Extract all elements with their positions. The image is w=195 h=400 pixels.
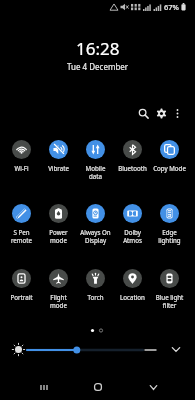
staticText: Bluetooth — [114, 164, 151, 172]
staticText: Portrait — [3, 293, 40, 301]
button[interactable]: Copy Mode — [151, 140, 188, 172]
staticText: 67% — [164, 2, 179, 12]
button[interactable]: Mobile — [77, 140, 114, 180]
staticText: remote — [3, 236, 40, 244]
staticText: Atmos — [114, 236, 151, 244]
staticText: Power — [40, 228, 77, 236]
staticText: Flight — [40, 293, 77, 301]
button[interactable]: Torch — [77, 269, 114, 301]
staticText: Wi-Fi — [3, 164, 40, 172]
button[interactable]: Wi-Fi — [3, 140, 40, 172]
staticText: Copy Mode — [151, 164, 188, 172]
button[interactable]: Search — [135, 105, 151, 121]
staticText: Location — [114, 293, 151, 301]
button[interactable]: Back — [131, 374, 175, 400]
staticText: mode — [40, 301, 77, 309]
staticText: Mobile — [77, 164, 114, 172]
button[interactable]: Always On — [77, 204, 114, 244]
button[interactable]: Portrait — [3, 269, 40, 301]
staticText: Torch — [77, 293, 114, 301]
staticText: filter — [151, 301, 188, 309]
staticText: Blue light — [151, 293, 188, 301]
button[interactable]: Dolby — [114, 204, 151, 244]
button[interactable]: Blue light — [151, 269, 188, 309]
button[interactable]: Bluetooth — [114, 140, 151, 172]
button[interactable]: Settings — [153, 105, 169, 121]
staticText: Tue 4 December — [67, 61, 129, 72]
button[interactable]: S Pen — [3, 204, 40, 244]
staticText: Vibrate — [40, 164, 77, 172]
button[interactable]: Recents — [22, 374, 66, 400]
button[interactable]: Vibrate — [40, 140, 77, 172]
staticText: S Pen — [3, 228, 40, 236]
staticText: Edge — [151, 228, 188, 236]
button[interactable]: Location — [114, 269, 151, 301]
button[interactable]: Home — [76, 374, 120, 400]
button[interactable]: More options — [169, 105, 185, 121]
staticText: lighting — [151, 236, 188, 244]
staticText: Display — [77, 236, 114, 244]
button[interactable]: Edge — [151, 204, 188, 244]
staticText: Always On — [77, 228, 114, 236]
staticText: 16:28 — [76, 37, 120, 60]
staticText: Dolby — [114, 228, 151, 236]
staticText: mode — [40, 236, 77, 244]
button[interactable]: Flight — [40, 269, 77, 309]
staticText: data — [77, 172, 114, 180]
button[interactable]: Power — [40, 204, 77, 244]
button[interactable]: Expand — [167, 341, 184, 358]
